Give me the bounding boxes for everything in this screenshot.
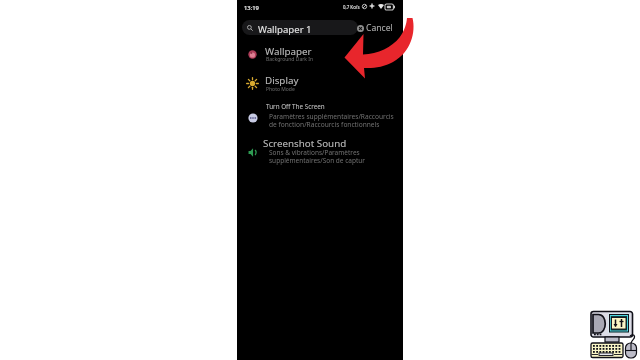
button[interactable]: Wallpaper 1 xyxy=(242,20,358,35)
button[interactable]: Turn Off The Screen xyxy=(237,102,403,136)
staticText: Sons & vibrations/Paramètres supplémenta… xyxy=(269,148,366,165)
staticText: Wallpaper xyxy=(265,45,312,58)
staticText: Screenshot Sound xyxy=(263,137,347,150)
staticText: 0,7 Ko/s xyxy=(343,4,360,10)
staticText: Wallpaper 1 xyxy=(258,23,312,35)
staticText: Background Dark In xyxy=(266,56,314,63)
button[interactable]: Wallpaper xyxy=(237,45,403,73)
staticText: 13:19 xyxy=(244,4,259,12)
button[interactable]: Cancel xyxy=(366,22,393,34)
staticText: Turn Off The Screen xyxy=(266,102,325,111)
staticText: Photo Mode xyxy=(266,86,295,93)
button[interactable]: Clear search xyxy=(356,24,364,32)
staticText: Display xyxy=(265,74,299,87)
staticText: Paramètres supplémentaires/Raccourcis de… xyxy=(269,112,397,129)
button[interactable]: Display xyxy=(237,74,403,102)
button[interactable]: Screenshot Sound xyxy=(237,137,403,171)
